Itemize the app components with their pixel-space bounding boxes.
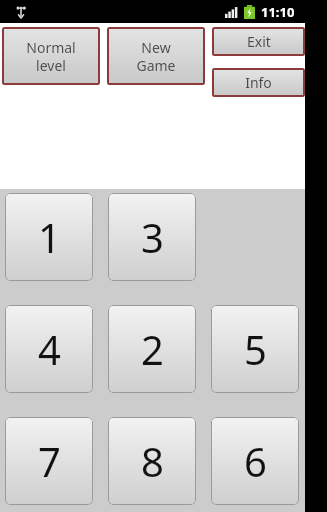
button[interactable]: 4 [5, 305, 93, 393]
button[interactable]: Exit [212, 27, 305, 56]
button[interactable]: Info [212, 68, 305, 97]
staticText: 4 [38, 322, 61, 376]
staticText: 2 [141, 322, 164, 376]
staticText: 1 [38, 210, 61, 264]
staticText: 5 [244, 322, 267, 376]
button[interactable]: Normal level [2, 27, 100, 85]
staticText: Normal level [26, 38, 76, 75]
button[interactable]: 3 [108, 193, 196, 281]
button[interactable]: 6 [211, 417, 299, 505]
staticText: 8 [141, 434, 164, 488]
button[interactable]: 8 [108, 417, 196, 505]
button[interactable]: New Game [107, 27, 205, 85]
button[interactable]: 2 [108, 305, 196, 393]
staticText: 6 [244, 434, 267, 488]
staticText: Info [245, 73, 272, 92]
button[interactable]: 7 [5, 417, 93, 505]
button[interactable]: 1 [5, 193, 93, 281]
staticText: 11:10 [261, 3, 295, 21]
button[interactable]: 5 [211, 305, 299, 393]
staticText: 3 [141, 210, 164, 264]
staticText: New Game [136, 38, 176, 75]
staticText: Exit [247, 32, 271, 51]
staticText: 7 [38, 434, 61, 488]
